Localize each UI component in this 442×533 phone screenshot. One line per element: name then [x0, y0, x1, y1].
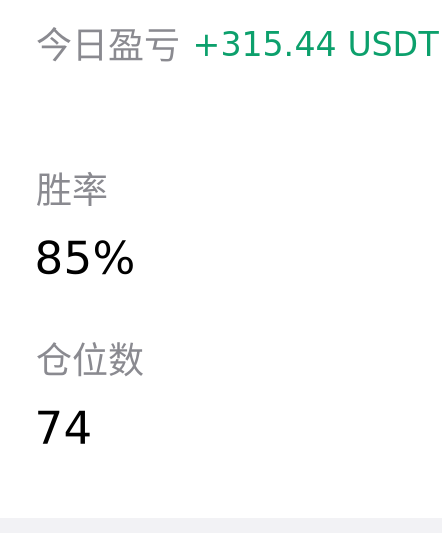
staticText: 胜率 [36, 161, 108, 213]
staticText: +315.44 USDT [192, 25, 438, 64]
staticText: 85% [35, 232, 136, 284]
staticText: 今日盈亏 [36, 17, 180, 69]
staticText: 74 [35, 402, 93, 454]
staticText: 仓位数 [36, 331, 144, 383]
